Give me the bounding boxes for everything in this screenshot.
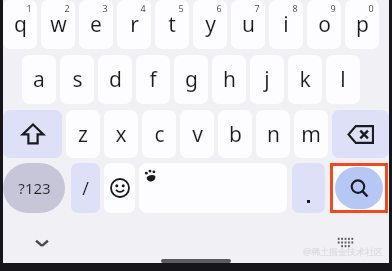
staticText: i	[283, 10, 289, 39]
button[interactable]: z	[66, 110, 100, 158]
button[interactable]: c	[142, 110, 176, 158]
staticText: z	[78, 120, 88, 149]
button[interactable]: Shift	[3, 110, 62, 158]
staticText: y	[205, 10, 216, 39]
staticText: u	[242, 10, 255, 39]
button[interactable]: i	[269, 0, 303, 49]
button[interactable]: u	[231, 0, 265, 49]
staticText: 7	[254, 2, 260, 14]
button[interactable]: p	[345, 0, 379, 49]
staticText: k	[299, 65, 311, 94]
staticText: ?123	[18, 178, 51, 198]
button[interactable]: v	[180, 110, 214, 158]
button[interactable]: Emoji	[104, 163, 135, 213]
button[interactable]: j	[250, 55, 284, 104]
staticText: v	[192, 120, 203, 149]
staticText: c	[154, 120, 165, 149]
staticText: 5	[178, 2, 184, 14]
staticText: 8	[292, 2, 298, 14]
button[interactable]: o	[307, 0, 341, 49]
button[interactable]: g	[174, 55, 208, 104]
staticText: f	[149, 65, 157, 94]
button[interactable]: Change keyboard	[332, 229, 358, 255]
button[interactable]: q	[3, 0, 37, 49]
button[interactable]: x	[104, 110, 138, 158]
staticText: m	[301, 120, 321, 149]
button[interactable]: m	[294, 110, 328, 158]
button[interactable]: h	[212, 55, 246, 104]
staticText: b	[229, 120, 242, 149]
staticText: /	[82, 176, 89, 201]
button[interactable]: a	[22, 55, 56, 104]
staticText: 3	[102, 2, 108, 14]
button[interactable]: r	[117, 0, 151, 49]
button[interactable]: s	[60, 55, 94, 104]
button[interactable]: k	[288, 55, 322, 104]
button[interactable]: ?123	[3, 163, 65, 213]
button[interactable]: y	[193, 0, 227, 49]
staticText: r	[130, 10, 139, 39]
staticText: a	[33, 65, 45, 94]
button[interactable]: f	[136, 55, 170, 104]
button[interactable]: e	[79, 0, 113, 49]
button[interactable]: Hide keyboard	[28, 229, 56, 257]
staticText: h	[223, 65, 236, 94]
staticText: 6	[216, 2, 222, 14]
button[interactable]: l	[326, 55, 360, 104]
staticText: w	[50, 10, 67, 39]
button[interactable]: n	[256, 110, 290, 158]
button[interactable]: Search	[333, 166, 385, 210]
staticText: d	[109, 65, 122, 94]
button[interactable]: Backspace	[332, 110, 389, 158]
button[interactable]	[292, 163, 325, 213]
staticText: 2	[64, 2, 70, 14]
staticText: s	[72, 65, 83, 94]
button[interactable]: t	[155, 0, 189, 49]
staticText: o	[318, 10, 331, 39]
staticText: g	[185, 65, 198, 94]
staticText: 1	[26, 2, 32, 14]
staticText: q	[14, 10, 27, 39]
staticText: j	[264, 65, 270, 94]
staticText: l	[340, 65, 346, 94]
button[interactable]: /	[71, 163, 100, 213]
staticText: p	[356, 10, 369, 39]
button[interactable]: b	[218, 110, 252, 158]
staticText: n	[267, 120, 280, 149]
staticText: @稀土掘金技术社区	[303, 245, 384, 257]
button[interactable]: d	[98, 55, 132, 104]
button[interactable]: w	[41, 0, 75, 49]
staticText: 0	[368, 2, 374, 14]
staticText: x	[115, 120, 127, 149]
button[interactable]: Space	[139, 163, 287, 213]
staticText: 9	[330, 2, 336, 14]
staticText: 4	[140, 2, 146, 14]
staticText: e	[90, 10, 102, 39]
staticText: t	[168, 10, 176, 39]
